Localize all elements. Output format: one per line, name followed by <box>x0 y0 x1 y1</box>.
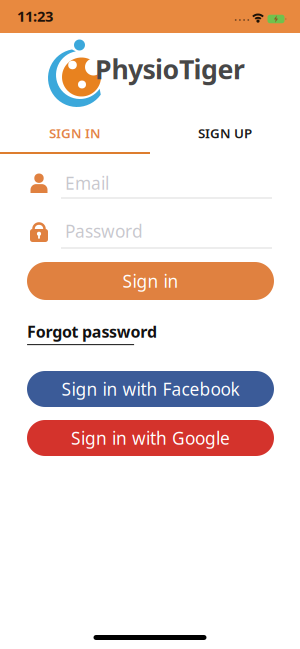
staticText: Email <box>65 171 109 194</box>
staticText: 11:23 <box>17 6 53 26</box>
button[interactable]: Email <box>30 170 272 196</box>
button[interactable]: Sign in with Google <box>27 420 274 456</box>
staticText: SIGN IN <box>49 124 101 142</box>
button[interactable]: Sign in <box>27 262 274 300</box>
button[interactable]: Password <box>30 218 272 244</box>
button[interactable]: SIGN IN <box>0 118 150 148</box>
button[interactable]: SIGN UP <box>150 118 300 148</box>
staticText: PhysioTiger <box>95 51 245 87</box>
staticText: SIGN UP <box>198 124 252 142</box>
staticText: Sign in <box>122 269 178 292</box>
staticText: Sign in with Facebook <box>61 377 239 400</box>
button[interactable]: Forgot password <box>27 321 157 345</box>
button[interactable]: Sign in with Facebook <box>27 371 274 407</box>
staticText: Forgot password <box>27 321 157 342</box>
staticText: Sign in with Google <box>71 426 230 449</box>
staticText: Password <box>65 219 143 242</box>
